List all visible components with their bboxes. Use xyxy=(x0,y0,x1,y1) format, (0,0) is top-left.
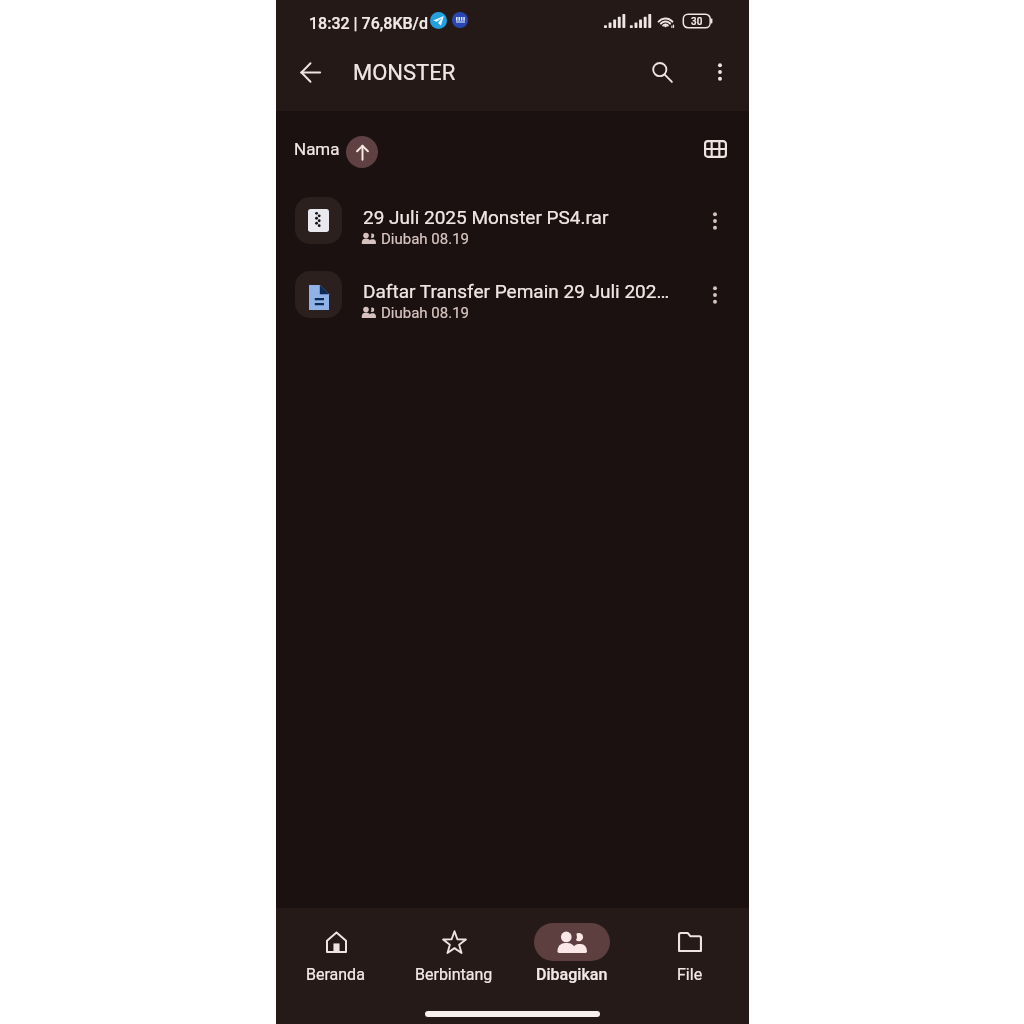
button[interactable]: 29 Juli 2025 Monster PS4.rar xyxy=(276,184,749,258)
staticText: 30 xyxy=(691,16,703,28)
staticText: Daftar Transfer Pemain 29 Juli 202… xyxy=(363,280,670,302)
button[interactable]: More options xyxy=(693,273,737,317)
staticText: Diubah 08.19 xyxy=(381,304,470,322)
staticText: 18:32 | 76,8KB/d xyxy=(309,14,428,33)
button[interactable]: Nama xyxy=(290,127,379,177)
staticText: Diubah 08.19 xyxy=(381,230,470,248)
staticText: File xyxy=(677,965,703,984)
button[interactable]: Dibagikan xyxy=(513,908,631,996)
staticText: Nama xyxy=(294,139,340,159)
staticText: Dibagikan xyxy=(536,965,608,984)
staticText: 29 Juli 2025 Monster PS4.rar xyxy=(363,206,609,228)
staticText: Berbintang xyxy=(415,965,493,984)
button[interactable]: Daftar Transfer Pemain 29 Juli 202… xyxy=(276,258,749,332)
staticText: MONSTER xyxy=(353,60,456,86)
button[interactable]: More options xyxy=(696,48,744,96)
button[interactable]: Berbintang xyxy=(395,908,513,996)
staticText: Beranda xyxy=(306,965,365,984)
button[interactable]: Back xyxy=(286,48,334,96)
button[interactable]: Switch to grid view xyxy=(693,127,737,171)
button[interactable]: Beranda xyxy=(276,908,395,996)
button[interactable]: File xyxy=(631,908,749,996)
button[interactable]: Search xyxy=(638,48,686,96)
button[interactable]: More options xyxy=(693,199,737,243)
